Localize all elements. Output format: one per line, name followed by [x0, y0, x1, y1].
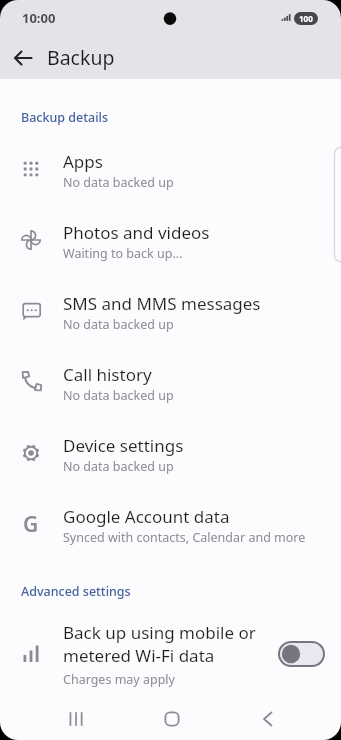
- button[interactable]: Device settings: [0, 419, 341, 490]
- button[interactable]: [278, 641, 325, 667]
- button[interactable]: [56, 699, 96, 739]
- button[interactable]: Photos and videos: [0, 206, 341, 277]
- staticText: Device settings: [63, 434, 184, 457]
- staticText: 10:00: [22, 9, 56, 27]
- staticText: Photos and videos: [63, 221, 210, 244]
- button[interactable]: [152, 699, 192, 739]
- button[interactable]: [248, 699, 288, 739]
- staticText: SMS and MMS messages: [63, 292, 261, 315]
- staticText: Call history: [63, 363, 152, 386]
- button[interactable]: Apps: [0, 135, 341, 206]
- staticText: Waiting to back up...: [63, 245, 183, 262]
- staticText: No data backed up: [63, 316, 174, 333]
- button[interactable]: Back up using mobile or: [0, 610, 341, 698]
- staticText: No data backed up: [63, 458, 174, 475]
- button[interactable]: G: [0, 490, 341, 561]
- button[interactable]: Call history: [0, 348, 341, 419]
- staticText: Synced with contacts, Calendar and more: [63, 529, 306, 546]
- staticText: Backup: [47, 44, 115, 71]
- staticText: 100: [299, 13, 313, 24]
- staticText: Advanced settings: [21, 583, 131, 600]
- staticText: metered Wi-Fi data: [63, 644, 215, 667]
- staticText: G: [23, 510, 39, 539]
- staticText: Charges may apply: [63, 671, 175, 688]
- staticText: Back up using mobile or: [63, 621, 256, 644]
- staticText: Google Account data: [63, 505, 230, 528]
- staticText: No data backed up: [63, 174, 174, 191]
- button[interactable]: [8, 42, 40, 74]
- staticText: No data backed up: [63, 387, 174, 404]
- button[interactable]: SMS and MMS messages: [0, 277, 341, 348]
- staticText: Apps: [63, 150, 103, 173]
- staticText: Backup details: [21, 109, 108, 126]
